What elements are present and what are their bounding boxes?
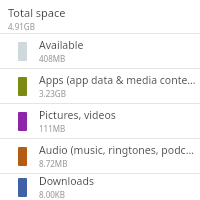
staticText: 111MB — [39, 123, 66, 134]
staticText: 8.00KB — [39, 189, 66, 200]
staticText: 408MB — [39, 53, 66, 64]
button[interactable]: Available — [0, 34, 200, 69]
staticText: Available — [39, 38, 84, 52]
staticText: 3.23GB — [39, 88, 66, 99]
button[interactable]: Pictures, videos — [0, 104, 200, 139]
staticText: 4.91GB — [8, 21, 35, 32]
staticText: Apps (app data & media content) — [39, 73, 196, 87]
button[interactable]: Apps (app data & media content) — [0, 69, 200, 104]
button[interactable]: Audio (music, ringtones, podcas.. — [0, 139, 200, 174]
button[interactable]: Downloads — [0, 174, 200, 200]
staticText: Total space — [8, 5, 66, 20]
staticText: Audio (music, ringtones, podcas.. — [39, 143, 196, 157]
staticText: Pictures, videos — [39, 108, 116, 122]
staticText: 8.72MB — [39, 158, 68, 169]
staticText: Downloads — [39, 174, 94, 188]
